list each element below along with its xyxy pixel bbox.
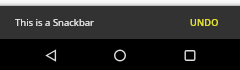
staticText: This is a Snackbar (15, 16, 95, 29)
staticText: UNDO (190, 16, 219, 29)
button[interactable]: Recent apps (175, 40, 205, 70)
button[interactable]: Back (35, 40, 65, 70)
button[interactable]: Home (105, 40, 135, 70)
button[interactable]: UNDO (189, 13, 220, 32)
